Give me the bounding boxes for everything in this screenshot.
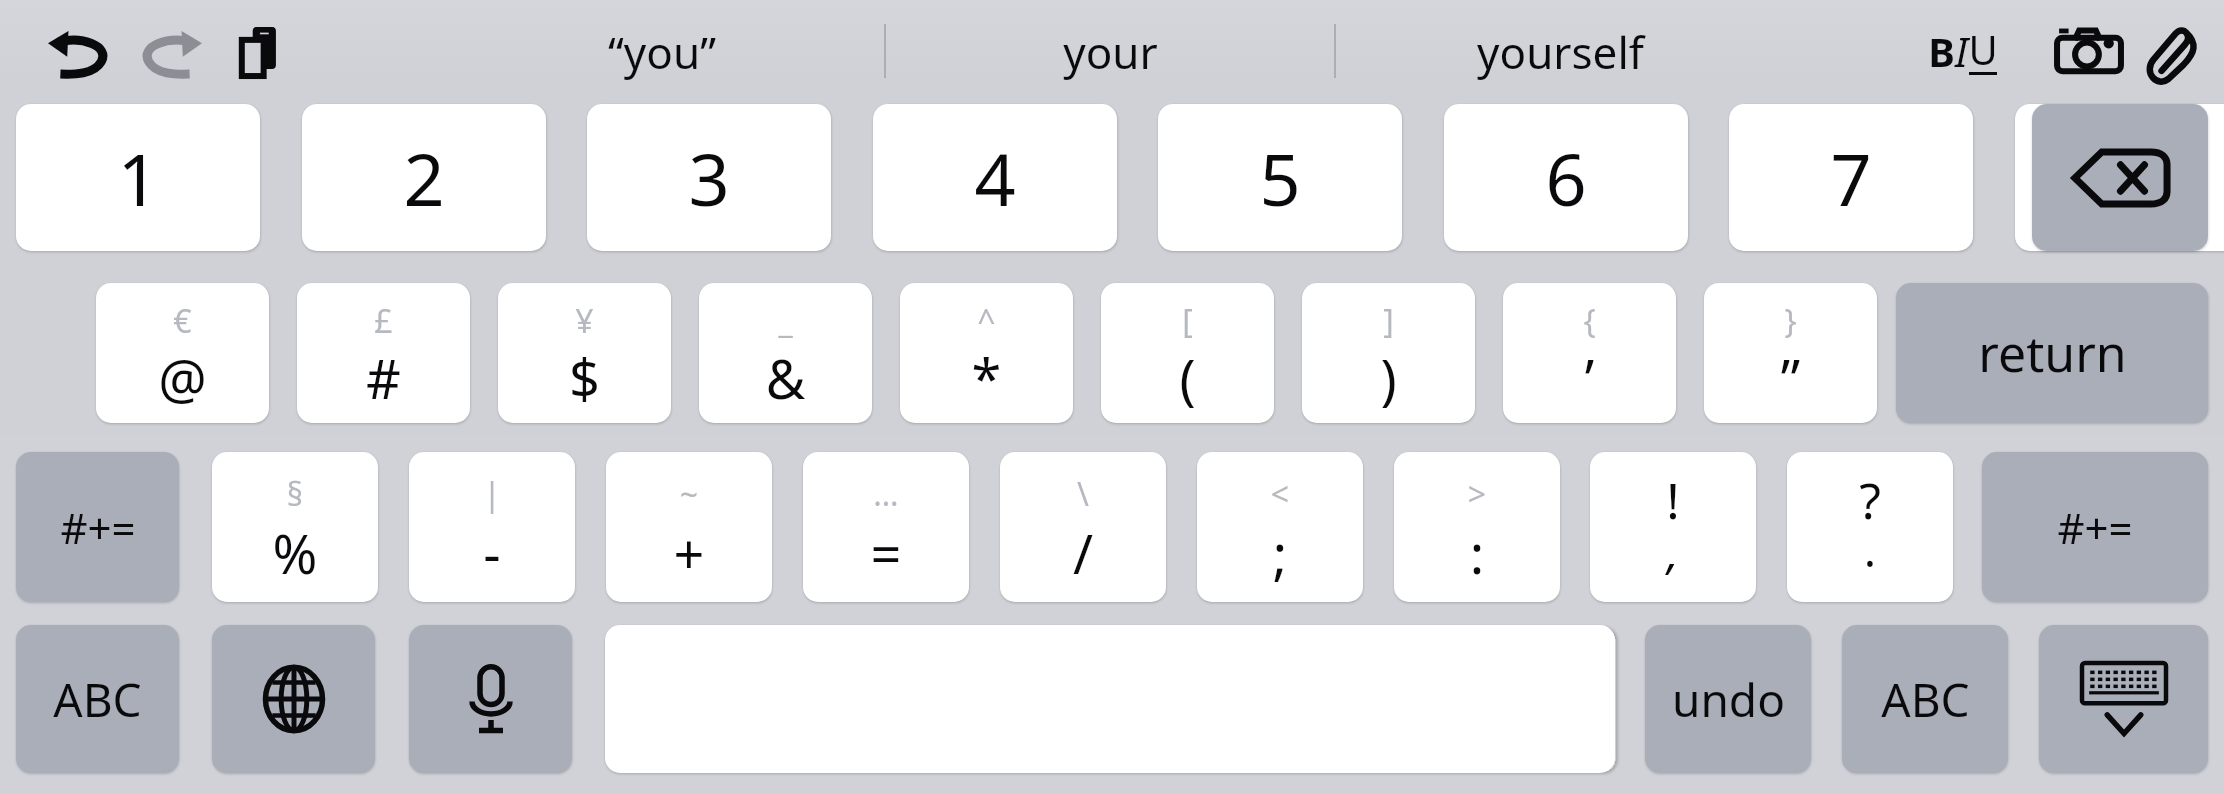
- staticText: your: [1063, 22, 1158, 82]
- staticText: ;: [1197, 516, 1363, 590]
- button[interactable]: your: [886, 10, 1334, 94]
- button[interactable]: 4: [873, 104, 1117, 251]
- button[interactable]: Redo: [140, 28, 202, 76]
- staticText: 4: [974, 129, 1016, 227]
- button[interactable]: [: [1101, 283, 1274, 423]
- button[interactable]: Backspace: [2032, 104, 2208, 251]
- button[interactable]: Bold italic underline: [1900, 18, 2026, 82]
- button[interactable]: <: [1197, 452, 1363, 602]
- button[interactable]: 2: [302, 104, 546, 251]
- staticText: _: [699, 299, 872, 343]
- staticText: ”: [1704, 341, 1877, 415]
- staticText: @: [96, 341, 269, 415]
- staticText: B: [1928, 24, 1955, 78]
- button[interactable]: !: [1590, 452, 1756, 602]
- button[interactable]: 7: [1729, 104, 1973, 251]
- staticText: =: [803, 516, 969, 590]
- button[interactable]: ~: [606, 452, 772, 602]
- staticText: {: [1503, 299, 1676, 343]
- button[interactable]: §: [212, 452, 378, 602]
- button[interactable]: {: [1503, 283, 1676, 423]
- staticText: ]: [1302, 299, 1475, 343]
- staticText: &: [699, 341, 872, 415]
- staticText: [: [1101, 299, 1274, 343]
- staticText: |: [409, 472, 575, 516]
- button[interactable]: |: [409, 452, 575, 602]
- staticText: ’: [1503, 341, 1676, 415]
- button[interactable]: Dictation: [409, 625, 572, 773]
- staticText: (: [1101, 341, 1274, 415]
- staticText: ^: [900, 299, 1073, 343]
- staticText: >: [1394, 472, 1560, 516]
- staticText: ?: [1787, 466, 1953, 534]
- staticText: <: [1197, 472, 1363, 516]
- button[interactable]: >: [1394, 452, 1560, 602]
- staticText: #+=: [2057, 499, 2133, 556]
- staticText: “you”: [608, 22, 716, 82]
- staticText: /: [1000, 516, 1166, 590]
- staticText: £: [297, 299, 470, 343]
- button[interactable]: 3: [587, 104, 831, 251]
- staticText: \: [1000, 472, 1166, 516]
- button[interactable]: 1: [16, 104, 260, 251]
- button[interactable]: …: [803, 452, 969, 602]
- button[interactable]: Paste: [233, 22, 291, 84]
- button[interactable]: ]: [1302, 283, 1475, 423]
- staticText: §: [212, 472, 378, 516]
- staticText: ): [1302, 341, 1475, 415]
- button[interactable]: #+=: [16, 452, 179, 602]
- staticText: ,: [1590, 520, 1756, 583]
- button[interactable]: }: [1704, 283, 1877, 423]
- button[interactable]: ?: [1787, 452, 1953, 602]
- staticText: return: [1978, 319, 2127, 387]
- button[interactable]: Next keyboard: [212, 625, 375, 773]
- staticText: U: [1968, 22, 1998, 76]
- button[interactable]: Undo: [48, 28, 110, 76]
- staticText: :: [1394, 516, 1560, 590]
- staticText: .: [1787, 518, 1953, 581]
- staticText: I: [1955, 24, 1968, 78]
- staticText: 6: [1545, 129, 1587, 227]
- button[interactable]: #+=: [1982, 452, 2208, 602]
- staticText: #: [297, 341, 470, 415]
- staticText: +: [606, 516, 772, 590]
- staticText: #+=: [60, 499, 136, 556]
- button[interactable]: return: [1896, 283, 2208, 423]
- button[interactable]: Hide keyboard: [2039, 625, 2208, 773]
- button[interactable]: Attach file: [2143, 20, 2201, 82]
- staticText: -: [409, 516, 575, 590]
- button[interactable]: €: [96, 283, 269, 423]
- button[interactable]: _: [699, 283, 872, 423]
- staticText: undo: [1672, 668, 1785, 731]
- staticText: 7: [1830, 129, 1872, 227]
- button[interactable]: ¥: [498, 283, 671, 423]
- button[interactable]: 8: [2015, 104, 2224, 251]
- button[interactable]: Camera: [2055, 22, 2123, 78]
- button[interactable]: 5: [1158, 104, 1402, 251]
- button[interactable]: 6: [1444, 104, 1688, 251]
- button[interactable]: yourself: [1336, 10, 1784, 94]
- staticText: }: [1704, 299, 1877, 343]
- staticText: 3: [688, 129, 730, 227]
- staticText: 5: [1259, 129, 1301, 227]
- button[interactable]: \: [1000, 452, 1166, 602]
- staticText: yourself: [1477, 22, 1644, 82]
- staticText: ~: [606, 472, 772, 516]
- button[interactable]: ^: [900, 283, 1073, 423]
- button[interactable]: undo: [1645, 625, 1811, 773]
- button[interactable]: £: [297, 283, 470, 423]
- staticText: …: [803, 472, 969, 516]
- staticText: *: [900, 341, 1073, 415]
- button[interactable]: “you”: [440, 10, 884, 94]
- staticText: 8: [2116, 129, 2158, 227]
- button[interactable]: ABC: [16, 625, 179, 773]
- staticText: €: [96, 299, 269, 343]
- staticText: $: [498, 341, 671, 415]
- staticText: ¥: [498, 299, 671, 343]
- staticText: ABC: [1881, 668, 1970, 731]
- staticText: !: [1590, 466, 1756, 534]
- button[interactable]: ABC: [1842, 625, 2008, 773]
- staticText: %: [212, 516, 378, 590]
- staticText: ABC: [53, 668, 142, 731]
